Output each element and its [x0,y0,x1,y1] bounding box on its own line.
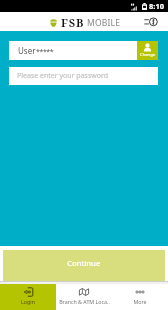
staticText: MOBILE [87,17,121,29]
button[interactable]: More [112,284,168,310]
staticText: Change [140,52,156,58]
staticText: Please enter your password [17,71,109,81]
staticText: 8:10 [149,1,164,11]
staticText: FSB [61,15,85,30]
staticText: More [133,298,147,305]
button[interactable]: Login [0,284,56,310]
button[interactable]: Quick balance [139,13,159,30]
button[interactable]: Please enter your password [9,67,158,85]
button[interactable]: User [9,41,137,60]
button[interactable]: Branch & ATM Loca.. [56,284,112,310]
staticText: Login [21,298,35,305]
button[interactable]: Change [137,41,158,60]
button[interactable]: Continue [3,250,165,281]
staticText: User [18,45,36,56]
staticText: ***** [36,47,54,57]
staticText: Branch & ATM Loca.. [59,298,110,305]
staticText: Continue [67,258,101,269]
